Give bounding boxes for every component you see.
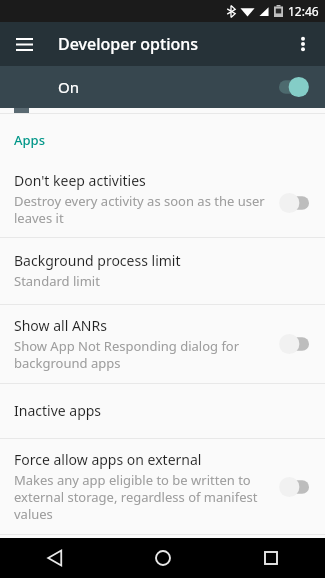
- staticText: Destroy every activity as soon as the us…: [14, 192, 269, 227]
- button[interactable]: Home: [133, 538, 193, 578]
- button[interactable]: Navigation menu: [4, 24, 44, 64]
- staticText: Apps: [14, 131, 45, 149]
- button[interactable]: More options: [283, 24, 323, 64]
- button[interactable]: Force allow apps on external: [0, 439, 325, 534]
- staticText: Makes any app eligible to be written to …: [14, 471, 269, 523]
- staticText: Inactive apps: [14, 401, 102, 420]
- button[interactable]: Show all ANRs: [0, 305, 325, 383]
- staticText: Show App Not Responding dialog for backg…: [14, 337, 269, 372]
- staticText: Show all ANRs: [14, 316, 107, 335]
- button[interactable]: Back: [24, 538, 84, 578]
- staticText: Don't keep activities: [14, 171, 146, 190]
- button[interactable]: Inactive apps: [0, 384, 325, 438]
- staticText: Standard limit: [14, 272, 100, 290]
- button[interactable]: Don't keep activities: [0, 169, 325, 237]
- staticText: On: [58, 77, 79, 97]
- button[interactable]: On: [0, 66, 325, 108]
- button[interactable]: Recent apps: [241, 538, 301, 578]
- staticText: Force allow apps on external: [14, 450, 202, 469]
- staticText: Developer options: [58, 33, 199, 55]
- staticText: 12:46: [288, 3, 319, 19]
- button[interactable]: Background process limit: [0, 238, 325, 304]
- staticText: Background process limit: [14, 251, 181, 270]
